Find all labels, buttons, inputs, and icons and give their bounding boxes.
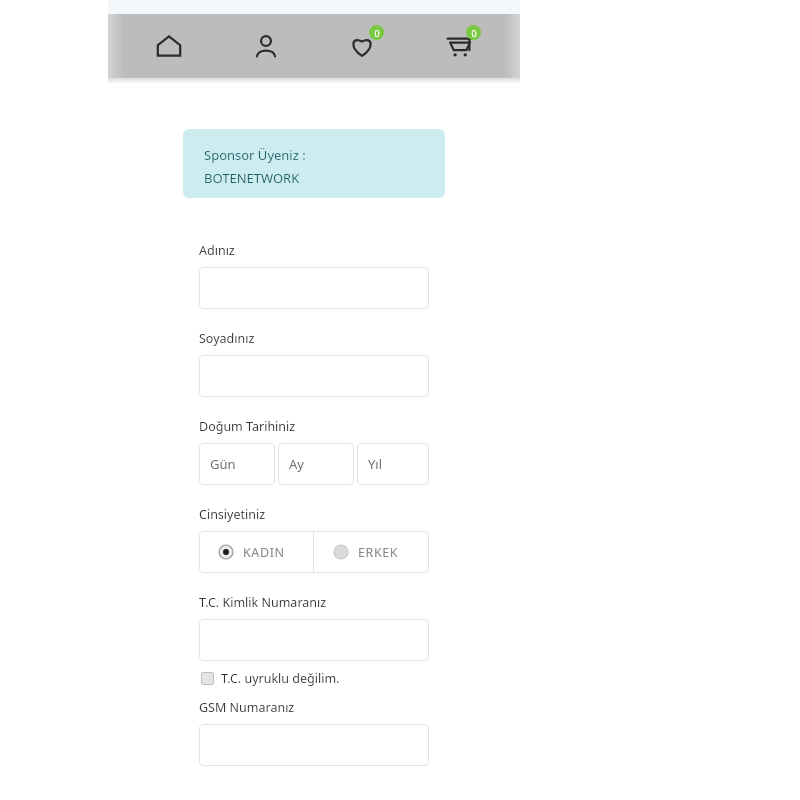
staticText: Doğum Tarihiniz — [199, 418, 296, 435]
staticText: BOTENETWORK — [204, 169, 300, 187]
button[interactable] — [199, 355, 429, 397]
button[interactable] — [199, 724, 429, 766]
button[interactable]: Favourites — [327, 14, 397, 78]
button[interactable]: Ay — [278, 443, 354, 485]
staticText: ERKEK — [358, 544, 399, 561]
button[interactable]: Cart — [424, 14, 494, 78]
button[interactable]: ERKEK — [314, 531, 429, 573]
staticText: Adınız — [199, 242, 235, 259]
staticText: T.C. uyruklu değilim. — [221, 670, 340, 687]
button[interactable]: T.C. uyruklu değilim. — [201, 670, 340, 687]
staticText: Cinsiyetiniz — [199, 506, 266, 523]
staticText: Yıl — [368, 455, 383, 473]
button[interactable]: KADIN — [199, 531, 313, 573]
button[interactable]: Yıl — [357, 443, 429, 485]
staticText: Gün — [210, 455, 236, 473]
staticText: 0 — [374, 27, 380, 39]
staticText: T.C. Kimlik Numaranız — [199, 594, 327, 611]
staticText: GSM Numaranız — [199, 699, 295, 716]
staticText: Sponsor Üyeniz : — [204, 146, 306, 164]
button[interactable]: Sponsor Üyeniz : — [183, 129, 445, 198]
staticText: Ay — [289, 455, 304, 473]
staticText: KADIN — [243, 544, 285, 561]
staticText: Soyadınız — [199, 330, 255, 347]
button[interactable]: Account — [231, 14, 301, 78]
button[interactable]: Gün — [199, 443, 275, 485]
button[interactable]: Home — [134, 14, 204, 78]
button[interactable] — [199, 619, 429, 661]
staticText: 0 — [471, 27, 477, 39]
button[interactable] — [199, 267, 429, 309]
